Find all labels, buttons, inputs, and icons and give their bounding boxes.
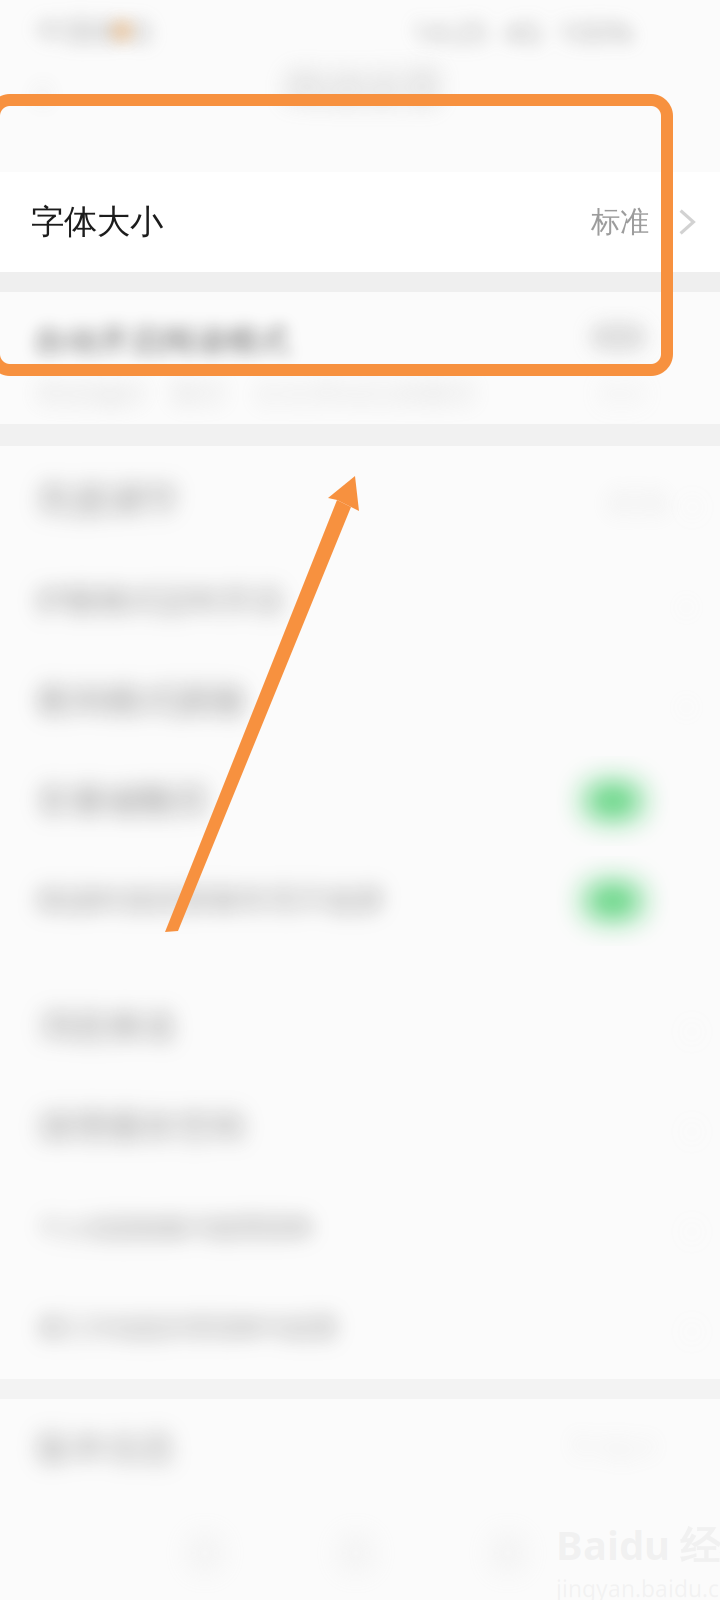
staticText: Baidu 经验 (556, 1518, 720, 1571)
staticText: 字体大小 (31, 201, 163, 242)
button[interactable]: 字体大小 (0, 172, 720, 272)
staticText: 标准 (591, 204, 649, 240)
staticText: jingyan.baidu.com (556, 1573, 720, 1600)
